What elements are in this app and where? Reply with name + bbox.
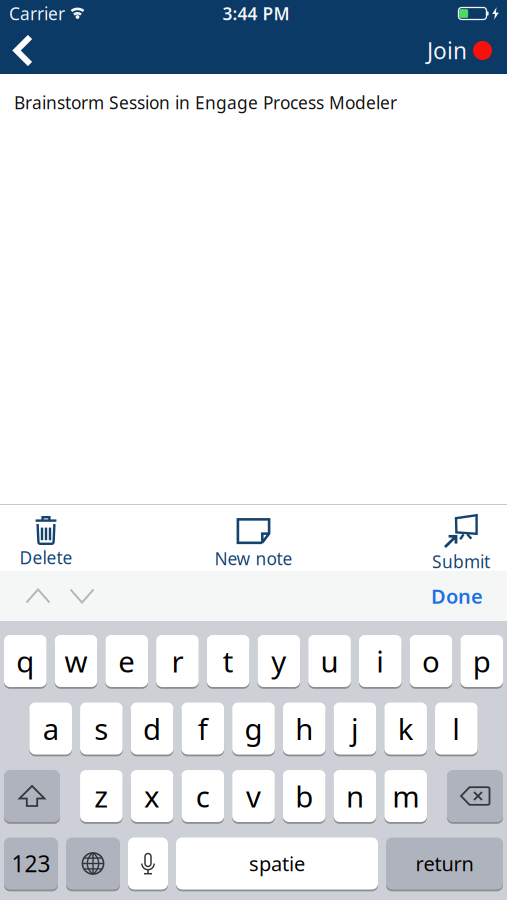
button[interactable]: return: [386, 837, 503, 889]
staticText: f: [198, 709, 208, 748]
staticText: i: [376, 641, 384, 680]
staticText: Delete: [19, 546, 72, 569]
button[interactable]: v: [232, 770, 275, 822]
button[interactable]: Next keyboard: [66, 837, 120, 889]
button[interactable]: r: [156, 635, 199, 687]
staticText: Brainstorm Session in Engage Process Mod…: [14, 91, 397, 114]
button[interactable]: New note: [203, 516, 303, 570]
button[interactable]: q: [4, 635, 47, 687]
staticText: 123: [11, 848, 50, 878]
staticText: New note: [214, 547, 292, 570]
staticText: return: [415, 850, 473, 877]
staticText: e: [118, 641, 135, 680]
button[interactable]: a: [29, 702, 72, 754]
button[interactable]: spatie: [176, 837, 378, 889]
button[interactable]: 123: [4, 837, 58, 889]
staticText: m: [392, 776, 419, 815]
button[interactable]: Shift: [4, 770, 60, 822]
staticText: w: [64, 641, 87, 680]
button[interactable]: x: [131, 770, 173, 822]
staticText: Join: [427, 35, 467, 65]
staticText: z: [94, 776, 108, 815]
staticText: d: [143, 709, 161, 748]
button[interactable]: f: [181, 702, 224, 754]
button[interactable]: l: [435, 702, 478, 754]
button[interactable]: t: [207, 635, 249, 687]
button[interactable]: i: [359, 635, 402, 687]
button[interactable]: k: [384, 702, 427, 754]
staticText: c: [196, 776, 210, 815]
staticText: y: [271, 641, 286, 680]
staticText: s: [94, 709, 108, 748]
button[interactable]: m: [384, 770, 427, 822]
staticText: t: [223, 641, 234, 680]
button[interactable]: j: [334, 702, 376, 754]
staticText: b: [295, 776, 313, 815]
button[interactable]: z: [80, 770, 123, 822]
staticText: k: [398, 709, 414, 748]
button[interactable]: u: [308, 635, 351, 687]
staticText: Done: [431, 583, 483, 609]
staticText: a: [43, 709, 59, 748]
button[interactable]: Delete: [447, 770, 503, 822]
button[interactable]: e: [105, 635, 148, 687]
button[interactable]: n: [334, 770, 376, 822]
button[interactable]: c: [181, 770, 224, 822]
staticText: p: [473, 641, 491, 680]
staticText: n: [346, 776, 364, 815]
button[interactable]: y: [257, 635, 300, 687]
staticText: g: [244, 709, 262, 748]
button[interactable]: w: [55, 635, 97, 687]
button[interactable]: s: [80, 702, 123, 754]
button[interactable]: Back: [0, 27, 44, 74]
staticText: Submit: [432, 550, 490, 573]
staticText: r: [171, 641, 183, 680]
button[interactable]: Done: [431, 583, 507, 609]
button[interactable]: g: [232, 702, 275, 754]
staticText: Carrier: [9, 2, 65, 25]
button[interactable]: o: [410, 635, 452, 687]
button[interactable]: b: [283, 770, 325, 822]
staticText: v: [246, 776, 261, 815]
staticText: j: [351, 709, 359, 748]
staticText: u: [321, 641, 339, 680]
staticText: o: [422, 641, 440, 680]
button[interactable]: d: [131, 702, 173, 754]
button[interactable]: p: [460, 635, 503, 687]
button[interactable]: Delete: [0, 516, 92, 569]
button[interactable]: h: [283, 702, 325, 754]
staticText: h: [295, 709, 313, 748]
staticText: spatie: [249, 850, 305, 877]
staticText: q: [16, 641, 34, 680]
staticText: x: [144, 776, 160, 815]
staticText: l: [452, 709, 460, 748]
button[interactable]: Join: [427, 27, 507, 74]
button[interactable]: Submit: [415, 516, 507, 573]
button[interactable]: Previous: [0, 588, 51, 604]
staticText: 3:44 PM: [222, 2, 289, 25]
button[interactable]: Dictate: [128, 837, 168, 889]
button[interactable]: Next: [51, 588, 95, 604]
